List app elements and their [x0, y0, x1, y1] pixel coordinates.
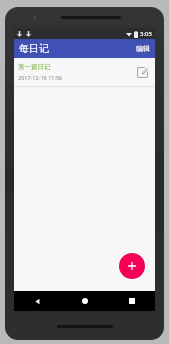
button[interactable]: 第一篇日记: [14, 58, 155, 87]
staticText: 3:05: [140, 30, 152, 38]
button[interactable]: 编辑: [136, 44, 150, 53]
staticText: 编辑: [136, 44, 150, 53]
staticText: 每日记: [19, 42, 49, 55]
button[interactable]: 每日记: [19, 42, 49, 55]
button[interactable]: New note: [119, 253, 145, 279]
staticText: 2017-12-19 11:56: [18, 74, 63, 81]
button[interactable]: Recent apps: [108, 291, 155, 311]
button[interactable]: Home: [61, 291, 108, 311]
staticText: 第一篇日记: [18, 63, 51, 71]
button[interactable]: Back: [14, 291, 61, 311]
button[interactable]: Edit note: [134, 64, 150, 80]
